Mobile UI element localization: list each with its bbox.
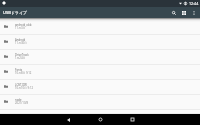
button[interactable]: LOST.DIR xyxy=(0,80,200,95)
staticText: DriveTrack xyxy=(15,53,29,57)
staticText: 2021/10/8 xyxy=(15,101,29,105)
staticText: LOST.DIR xyxy=(15,83,27,87)
staticText: USBドライブ xyxy=(3,10,28,15)
staticText: 10月10日 9:12 xyxy=(15,86,33,90)
button[interactable]: Home xyxy=(92,114,108,125)
staticText: Pictures xyxy=(15,113,26,117)
staticText: 12:44 xyxy=(189,1,199,6)
button[interactable]: node xyxy=(0,95,200,110)
button[interactable]: DriveTrack xyxy=(0,50,200,65)
staticText: Android xyxy=(15,38,26,42)
staticText: 1月24日 xyxy=(15,56,26,60)
staticText: Fonts xyxy=(15,68,23,72)
button[interactable]: More options xyxy=(189,8,199,18)
button[interactable]: Fonts xyxy=(0,65,200,80)
button[interactable]: Back xyxy=(60,114,76,125)
button[interactable]: Android xyxy=(0,35,200,50)
staticText: 11月30日 xyxy=(15,41,27,45)
button[interactable]: android_obb xyxy=(0,20,200,35)
button[interactable]: Search xyxy=(169,8,179,18)
button[interactable]: Pictures xyxy=(0,110,200,114)
staticText: 10月8日 9:12 xyxy=(15,71,32,75)
staticText: node xyxy=(15,98,22,102)
button[interactable]: Change view xyxy=(179,8,189,18)
button[interactable]: Recents xyxy=(124,114,140,125)
staticText: android_obb xyxy=(15,23,32,27)
staticText: 11月3日 xyxy=(15,26,26,30)
